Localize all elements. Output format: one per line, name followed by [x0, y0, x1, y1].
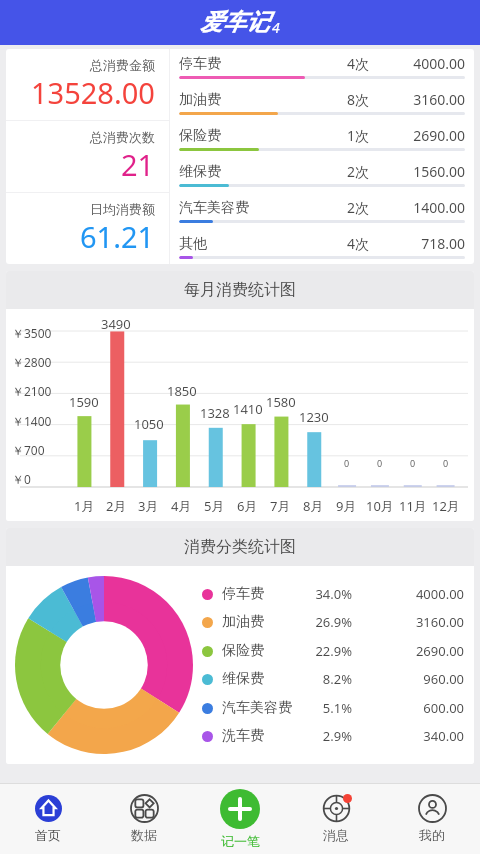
- staticText: 首页: [35, 827, 61, 843]
- staticText: 12月: [432, 497, 460, 515]
- button[interactable]: 其他: [179, 228, 465, 264]
- button[interactable]: 加油费: [179, 84, 465, 120]
- button[interactable]: 汽车美容费: [179, 192, 465, 228]
- staticText: 3160.00: [358, 613, 464, 631]
- staticText: 2次: [347, 198, 391, 217]
- button[interactable]: 数据: [96, 784, 192, 854]
- button[interactable]: 停车费: [202, 585, 464, 603]
- staticText: 保险费: [179, 127, 347, 145]
- staticText: 600.00: [358, 699, 464, 717]
- staticText: 4次: [347, 54, 391, 73]
- staticText: ￥2800: [12, 354, 52, 370]
- staticText: 8次: [347, 90, 391, 109]
- staticText: 总消费金额: [90, 57, 155, 73]
- staticText: 13528.00: [31, 73, 155, 112]
- staticText: 22.9%: [306, 642, 352, 660]
- staticText: 2690.00: [391, 126, 465, 145]
- staticText: 汽车美容费: [222, 699, 306, 717]
- staticText: 2.9%: [306, 727, 352, 745]
- button[interactable]: 消息: [288, 784, 384, 854]
- staticText: 我的: [419, 827, 445, 843]
- staticText: 总消费次数: [90, 129, 155, 145]
- staticText: 停车费: [179, 55, 347, 73]
- staticText: 2690.00: [358, 642, 464, 660]
- staticText: 1560.00: [391, 162, 465, 181]
- staticText: 340.00: [358, 727, 464, 745]
- staticText: 每月消费统计图: [184, 280, 296, 300]
- staticText: 4次: [347, 234, 391, 253]
- staticText: 4000.00: [358, 585, 464, 603]
- staticText: 汽车美容费: [179, 199, 347, 217]
- staticText: 34.0%: [306, 585, 352, 603]
- staticText: 2次: [347, 162, 391, 181]
- staticText: 加油费: [179, 91, 347, 109]
- button[interactable]: 保险费: [179, 120, 465, 156]
- staticText: 2月: [106, 497, 127, 515]
- staticText: 记一笔: [221, 833, 260, 849]
- staticText: 0: [443, 457, 449, 469]
- staticText: ￥2100: [12, 383, 52, 399]
- staticText: 4月: [171, 497, 192, 515]
- staticText: 10月: [366, 497, 394, 515]
- staticText: ￥3500: [12, 325, 52, 341]
- staticText: 4000.00: [391, 54, 465, 73]
- button[interactable]: 停车费: [179, 49, 465, 84]
- staticText: 6月: [237, 497, 258, 515]
- staticText: 1328: [200, 404, 230, 422]
- staticText: 3月: [138, 497, 159, 515]
- staticText: 0: [344, 457, 350, 469]
- button[interactable]: 记一笔: [192, 784, 288, 854]
- staticText: 718.00: [391, 234, 465, 253]
- staticText: 维保费: [222, 670, 306, 688]
- staticText: 1590: [69, 393, 99, 411]
- staticText: 洗车费: [222, 727, 306, 745]
- staticText: 9月: [336, 497, 357, 515]
- staticText: 日均消费额: [90, 201, 155, 217]
- staticText: 21: [121, 145, 155, 184]
- button[interactable]: 加油费: [202, 613, 464, 631]
- button[interactable]: 维保费: [202, 670, 464, 688]
- staticText: 1次: [347, 126, 391, 145]
- staticText: 消费分类统计图: [184, 537, 296, 557]
- button[interactable]: 洗车费: [202, 727, 464, 745]
- staticText: 3490: [101, 315, 131, 333]
- button[interactable]: 维保费: [179, 156, 465, 192]
- staticText: 3160.00: [391, 90, 465, 109]
- staticText: ￥1400: [12, 413, 52, 429]
- button[interactable]: 汽车美容费: [202, 699, 464, 717]
- staticText: 1850: [167, 382, 197, 400]
- staticText: 0: [377, 457, 383, 469]
- staticText: 11月: [399, 497, 427, 515]
- button[interactable]: 首页: [0, 784, 96, 854]
- staticText: 61.21: [80, 217, 155, 256]
- staticText: ￥0: [12, 471, 31, 487]
- staticText: 其他: [179, 235, 347, 253]
- staticText: 26.9%: [306, 613, 352, 631]
- staticText: 1400.00: [391, 198, 465, 217]
- staticText: 1580: [266, 393, 296, 411]
- staticText: ￥700: [12, 442, 45, 458]
- staticText: 1月: [74, 497, 95, 515]
- staticText: 保险费: [222, 642, 306, 660]
- staticText: 8.2%: [306, 670, 352, 688]
- staticText: 维保费: [179, 163, 347, 181]
- staticText: 5月: [204, 497, 225, 515]
- staticText: 加油费: [222, 613, 306, 631]
- staticText: 7月: [270, 497, 291, 515]
- staticText: 4: [272, 18, 280, 37]
- staticText: 0: [410, 457, 416, 469]
- staticText: 5.1%: [306, 699, 352, 717]
- staticText: 1050: [134, 415, 164, 433]
- staticText: 960.00: [358, 670, 464, 688]
- staticText: 消息: [323, 827, 349, 843]
- button[interactable]: 我的: [384, 784, 480, 854]
- staticText: 1410: [233, 400, 263, 418]
- staticText: 1230: [299, 408, 329, 426]
- staticText: 数据: [131, 827, 157, 843]
- staticText: 8月: [303, 497, 324, 515]
- button[interactable]: 保险费: [202, 642, 464, 660]
- staticText: 爱车记: [200, 8, 269, 37]
- staticText: 停车费: [222, 585, 306, 603]
